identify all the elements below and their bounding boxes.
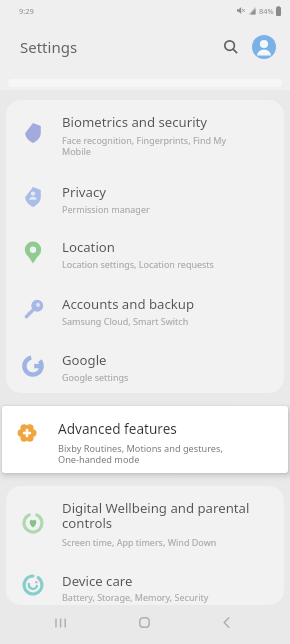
staticText: Google settings: [62, 371, 129, 383]
staticText: Privacy: [62, 183, 106, 201]
staticText: Screen time, App timers, Wind Down: [62, 536, 217, 548]
staticText: Settings: [20, 37, 78, 57]
staticText: Battery, Storage, Memory, Security: [62, 591, 209, 603]
button[interactable]: [6, 486, 284, 558]
staticText: Advanced features: [58, 419, 177, 438]
staticText: Biometrics and security: [62, 113, 208, 131]
staticText: Location settings, Location requests: [62, 258, 214, 270]
button[interactable]: Advanced features: [2, 406, 288, 473]
staticText: Device care: [62, 572, 133, 590]
button[interactable]: [206, 601, 246, 644]
staticText: 9:29: [19, 6, 34, 16]
staticText: Location: [62, 238, 115, 256]
staticText: Google: [62, 351, 107, 369]
button[interactable]: [41, 601, 81, 644]
button[interactable]: [6, 228, 284, 285]
button[interactable]: [6, 342, 284, 393]
button[interactable]: [252, 35, 276, 59]
staticText: Permission manager: [62, 203, 150, 215]
staticText: Samsung Cloud, Smart Switch: [62, 315, 189, 327]
button[interactable]: [6, 170, 284, 228]
staticText: Accounts and backup: [62, 295, 195, 313]
staticText: Face recognition, Fingerprints, Find My …: [62, 134, 227, 158]
button[interactable]: [6, 100, 284, 170]
button[interactable]: [6, 558, 284, 605]
staticText: Bixby Routines, Motions and gestures, On…: [58, 442, 223, 466]
button[interactable]: [124, 601, 164, 644]
button[interactable]: [217, 33, 245, 61]
staticText: Digital Wellbeing and parental controls: [62, 499, 250, 532]
staticText: 84%: [259, 6, 274, 16]
button[interactable]: [6, 285, 284, 342]
